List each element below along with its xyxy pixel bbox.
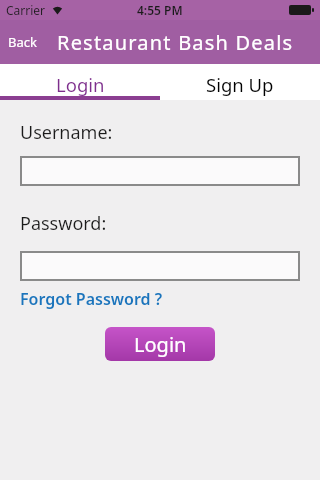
staticText: 4:55 PM xyxy=(137,2,183,18)
button[interactable]: Back xyxy=(4,29,41,55)
staticText: Username: xyxy=(20,120,113,145)
button[interactable] xyxy=(20,251,300,281)
button[interactable]: Login xyxy=(105,327,215,361)
button[interactable]: Sign Up xyxy=(160,64,320,100)
staticText: Login xyxy=(56,72,105,97)
staticText: Login xyxy=(134,331,187,358)
button[interactable]: Forgot Password ? xyxy=(20,288,163,310)
button[interactable]: Login xyxy=(0,64,160,100)
staticText: Sign Up xyxy=(206,72,274,97)
button[interactable] xyxy=(20,156,300,186)
staticText: Carrier xyxy=(6,2,46,18)
staticText: Back xyxy=(8,33,37,51)
staticText: Password: xyxy=(20,211,107,236)
staticText: Restaurant Bash Deals xyxy=(57,29,294,56)
